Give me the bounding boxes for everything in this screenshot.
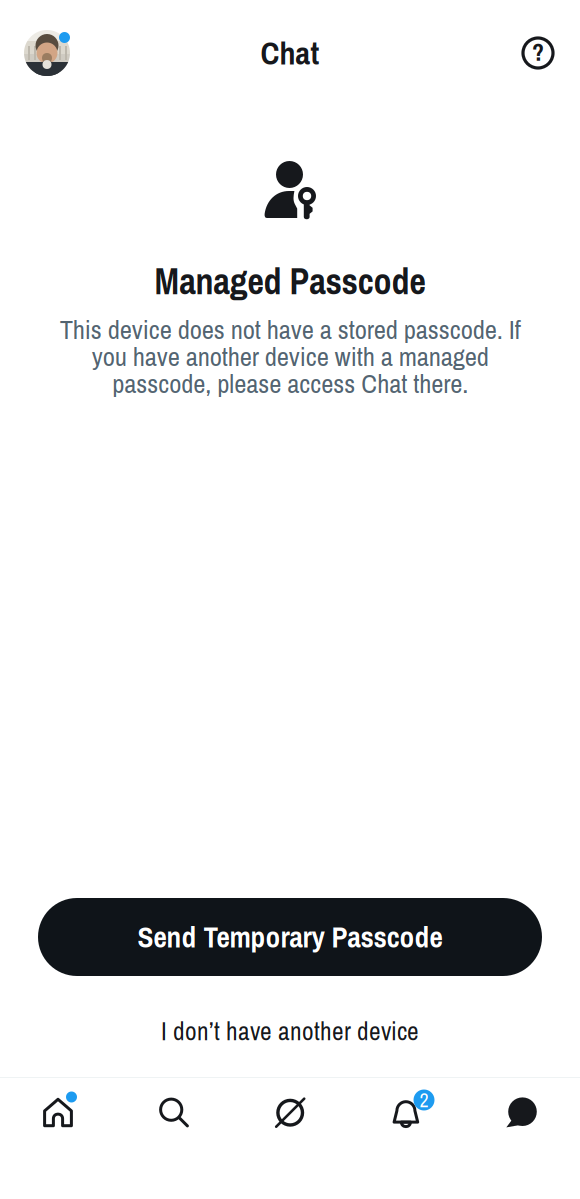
button[interactable]: Notifications (348, 1078, 464, 1147)
button[interactable]: Help (516, 31, 560, 75)
button[interactable]: Home (0, 1078, 116, 1147)
staticText: ? (532, 36, 544, 68)
button[interactable]: Account (19, 25, 75, 81)
staticText: This device does not have a stored passc… (59, 311, 520, 401)
button[interactable]: Grok (232, 1078, 348, 1147)
staticText: 2 (419, 1086, 428, 1113)
staticText: Managed Passcode (154, 257, 425, 305)
button[interactable]: Send Temporary Passcode (38, 898, 542, 976)
button[interactable]: Messages (464, 1078, 580, 1147)
staticText: Send Temporary Passcode (137, 917, 442, 957)
staticText: I don’t have another device (161, 1014, 419, 1048)
staticText: Chat (260, 31, 319, 74)
button[interactable]: I don’t have another device (161, 1014, 419, 1048)
button[interactable]: Search (116, 1078, 232, 1147)
